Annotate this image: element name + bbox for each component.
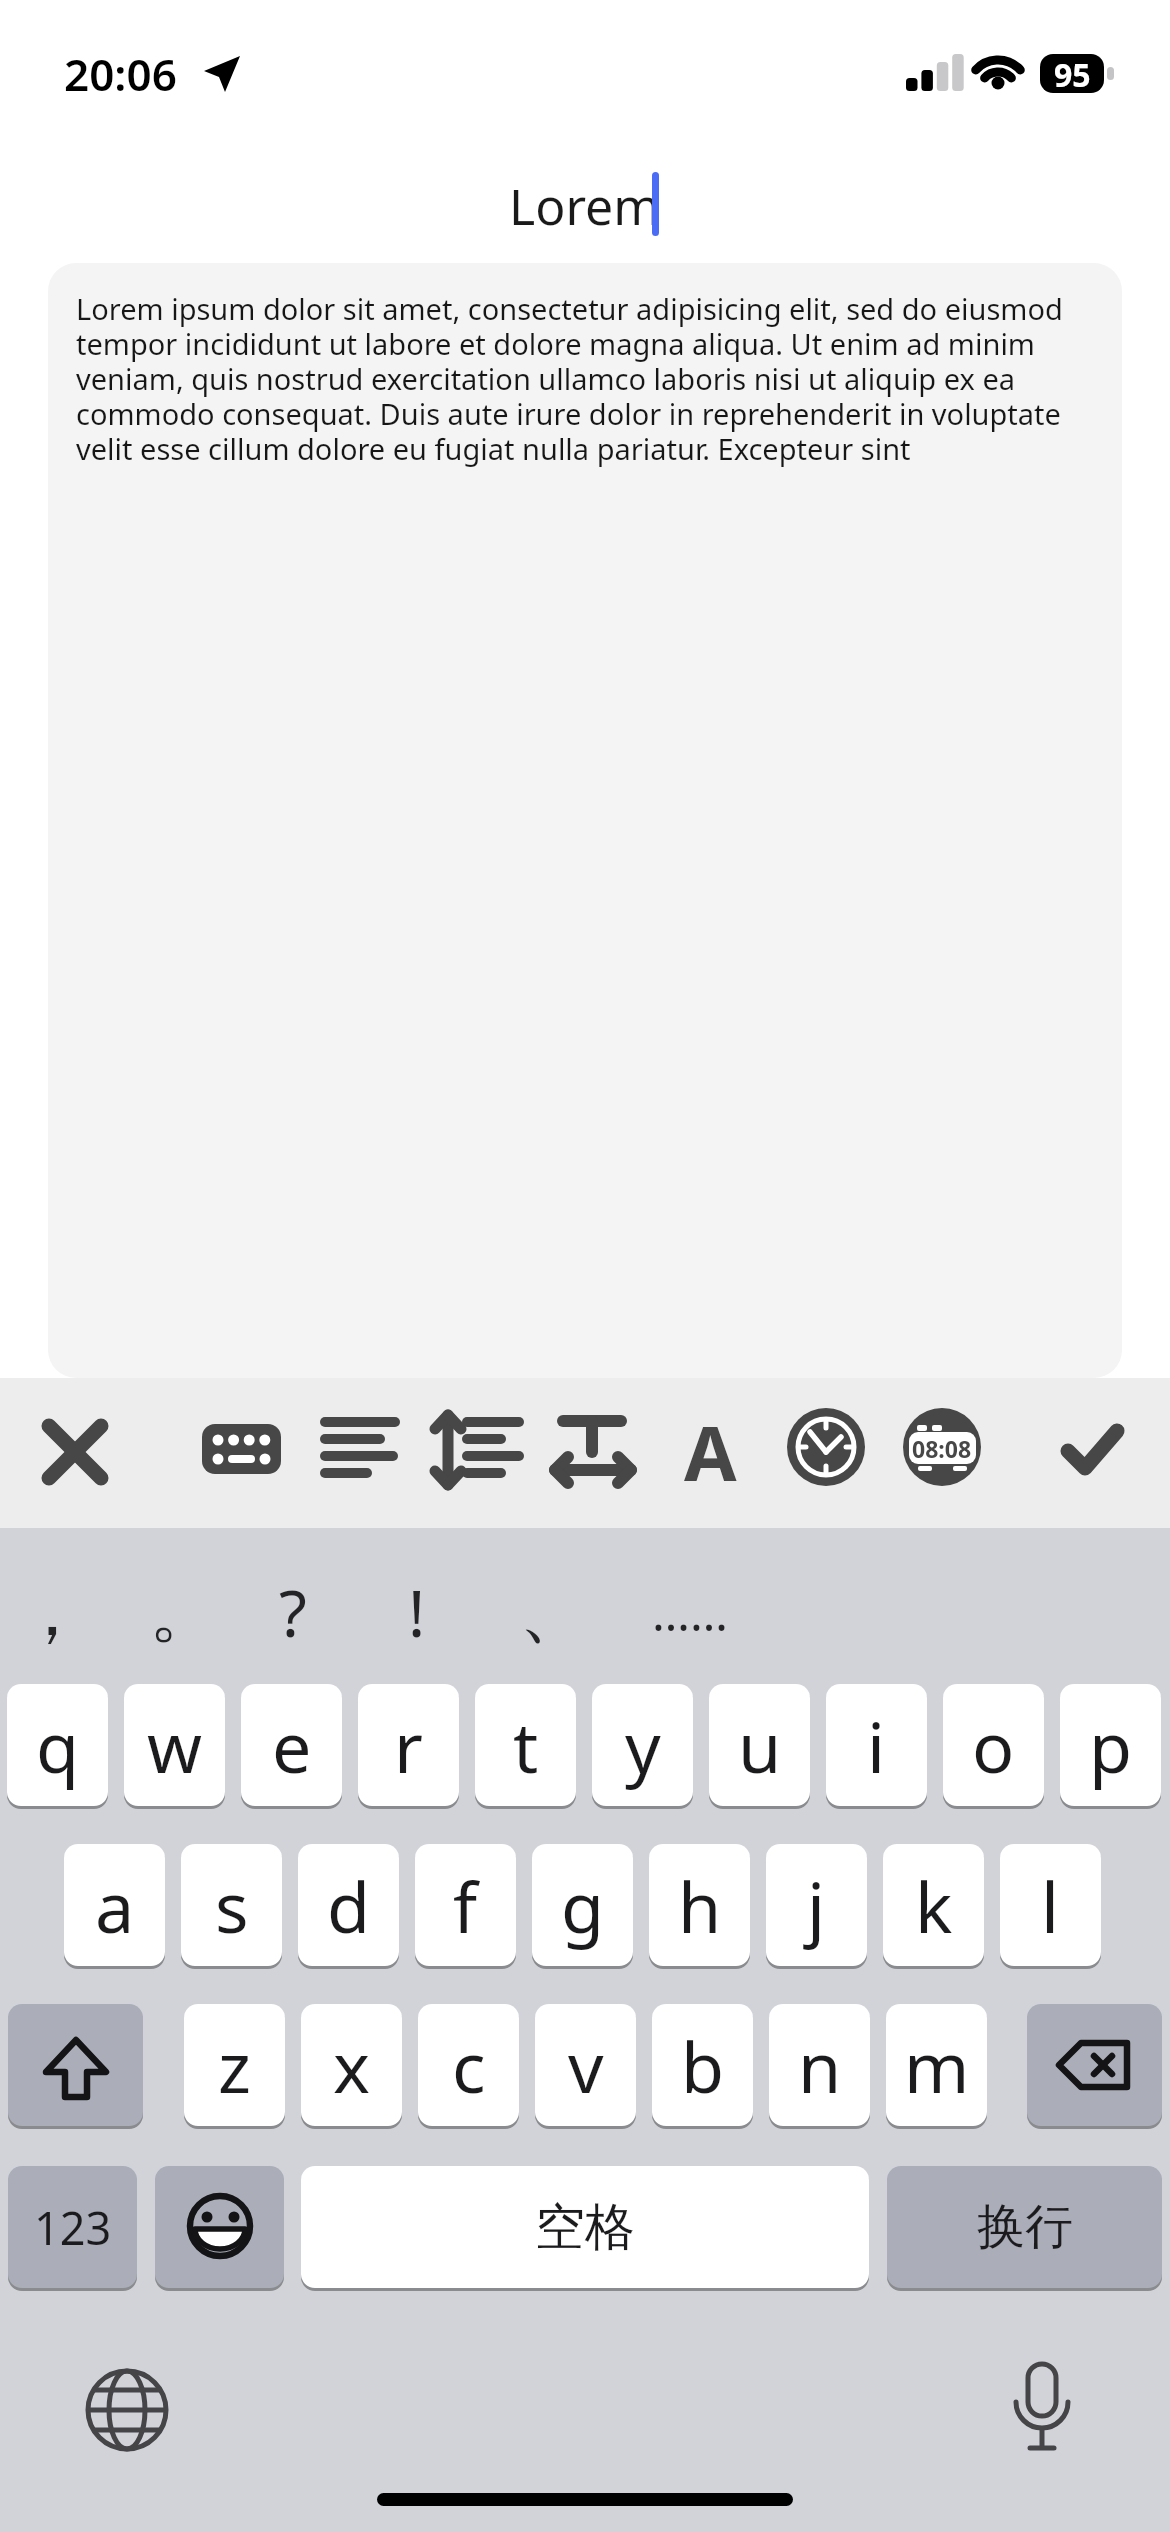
staticText: h — [678, 1858, 722, 1953]
staticText: u — [738, 1698, 782, 1793]
staticText: 20:06 — [64, 44, 177, 104]
button[interactable] — [423, 1397, 533, 1507]
button[interactable]: n — [769, 2004, 870, 2130]
staticText: y — [625, 1698, 661, 1793]
button[interactable]: i — [826, 1684, 927, 1810]
button[interactable]: 、 — [496, 1556, 612, 1668]
staticText: q — [36, 1698, 80, 1793]
button[interactable] — [77, 2360, 177, 2460]
button[interactable]: c — [418, 2004, 519, 2130]
button[interactable]: 换行 — [887, 2166, 1162, 2292]
button[interactable] — [8, 2004, 143, 2130]
button[interactable]: v — [535, 2004, 636, 2130]
staticText: k — [915, 1858, 953, 1953]
staticText: b — [681, 2018, 725, 2113]
staticText: Lorem — [509, 172, 661, 240]
staticText: e — [272, 1698, 312, 1793]
staticText: A — [684, 1400, 737, 1500]
staticText: ? — [279, 1569, 307, 1656]
button[interactable]: l — [1000, 1844, 1101, 1970]
staticText: i — [867, 1698, 886, 1793]
button[interactable]: ? — [235, 1556, 351, 1668]
button[interactable] — [1027, 2004, 1162, 2130]
button[interactable]: p — [1060, 1684, 1161, 1810]
button[interactable] — [886, 1397, 996, 1507]
staticText: n — [798, 2018, 842, 2113]
button[interactable]: o — [943, 1684, 1044, 1810]
staticText: Lorem ipsum dolor sit amet, consectetur … — [76, 289, 1116, 469]
button[interactable] — [538, 1397, 648, 1507]
button[interactable]: s — [181, 1844, 282, 1970]
button[interactable]: h — [649, 1844, 750, 1970]
staticText: o — [972, 1698, 1015, 1793]
button[interactable]: Lorem ipsum dolor sit amet, consectetur … — [48, 263, 1122, 1378]
button[interactable]: ! — [359, 1556, 475, 1668]
button[interactable] — [655, 1397, 765, 1507]
staticText: 95 — [1054, 53, 1091, 93]
staticText: 、 — [519, 1568, 589, 1656]
button[interactable]: d — [298, 1844, 399, 1970]
staticText: 。 — [149, 1568, 219, 1656]
staticText: c — [452, 2018, 486, 2113]
button[interactable]: 。 — [126, 1556, 242, 1668]
button[interactable]: f — [415, 1844, 516, 1970]
button[interactable]: r — [358, 1684, 459, 1810]
button[interactable]: y — [592, 1684, 693, 1810]
button[interactable]: 空格 — [301, 2166, 869, 2292]
staticText: 08:08 — [912, 1433, 972, 1463]
button[interactable] — [20, 1397, 130, 1507]
button[interactable]: b — [652, 2004, 753, 2130]
button[interactable]: ， — [0, 1556, 110, 1668]
button[interactable]: j — [766, 1844, 867, 1970]
staticText: j — [807, 1858, 826, 1953]
button[interactable]: …… — [632, 1556, 748, 1668]
staticText: p — [1089, 1698, 1133, 1793]
button[interactable]: a — [64, 1844, 165, 1970]
staticText: ， — [17, 1568, 87, 1656]
button[interactable]: t — [475, 1684, 576, 1810]
button[interactable]: m — [886, 2004, 987, 2130]
staticText: x — [333, 2018, 371, 2113]
staticText: a — [95, 1858, 135, 1953]
staticText: g — [561, 1858, 605, 1953]
button[interactable]: u — [709, 1684, 810, 1810]
button[interactable]: e — [241, 1684, 342, 1810]
staticText: ! — [408, 1569, 426, 1656]
button[interactable] — [155, 2166, 284, 2292]
button[interactable] — [1037, 1397, 1147, 1507]
staticText: s — [215, 1858, 249, 1953]
button[interactable]: z — [184, 2004, 285, 2130]
button[interactable]: k — [883, 1844, 984, 1970]
staticText: 空格 — [535, 2196, 635, 2259]
button[interactable]: w — [124, 1684, 225, 1810]
button[interactable]: 123 — [8, 2166, 137, 2292]
staticText: w — [147, 1698, 203, 1793]
button[interactable]: q — [7, 1684, 108, 1810]
staticText: l — [1041, 1858, 1060, 1953]
staticText: v — [568, 2018, 604, 2113]
button[interactable]: x — [301, 2004, 402, 2130]
staticText: f — [453, 1858, 478, 1953]
button[interactable]: g — [532, 1844, 633, 1970]
staticText: z — [218, 2018, 251, 2113]
staticText: …… — [652, 1580, 728, 1645]
staticText: 换行 — [977, 2197, 1073, 2257]
staticText: r — [394, 1698, 423, 1793]
button[interactable] — [185, 1397, 295, 1507]
button[interactable] — [304, 1397, 414, 1507]
staticText: d — [327, 1858, 371, 1953]
staticText: t — [513, 1698, 539, 1793]
button[interactable] — [771, 1397, 881, 1507]
button[interactable] — [992, 2355, 1092, 2465]
staticText: 123 — [34, 2197, 112, 2258]
staticText: m — [904, 2018, 970, 2113]
